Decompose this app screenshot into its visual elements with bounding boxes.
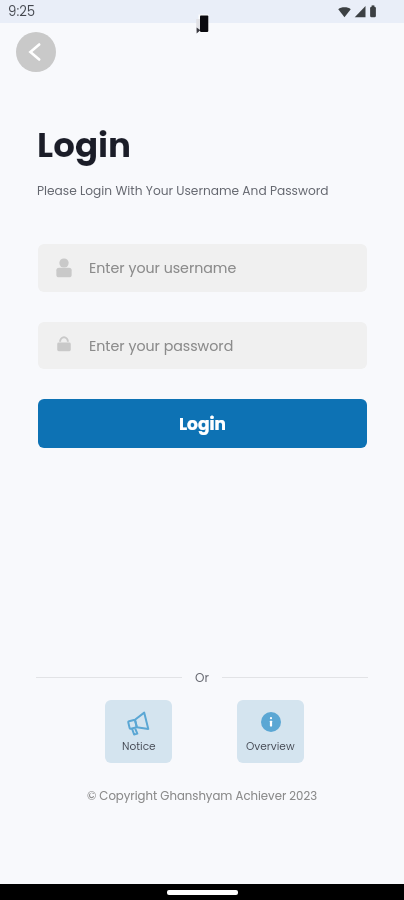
button[interactable]: Enter your password <box>38 322 367 369</box>
button[interactable]: Back <box>16 32 56 72</box>
staticText: Enter your username <box>89 258 237 278</box>
staticText: Please Login With Your Username And Pass… <box>37 182 329 199</box>
staticText: 9:25 <box>8 2 36 21</box>
staticText: Login <box>179 412 226 436</box>
button[interactable]: Notice <box>105 700 172 763</box>
staticText: Or <box>195 669 209 686</box>
staticText: Notice <box>122 739 156 754</box>
staticText: Enter your password <box>89 336 234 356</box>
button[interactable]: Overview <box>237 700 304 763</box>
button[interactable]: Enter your username <box>38 244 367 292</box>
button[interactable]: Login <box>38 399 367 448</box>
staticText: Overview <box>246 739 295 754</box>
staticText: © Copyright Ghanshyam Achiever 2023 <box>0 788 404 804</box>
staticText: Login <box>37 121 131 169</box>
